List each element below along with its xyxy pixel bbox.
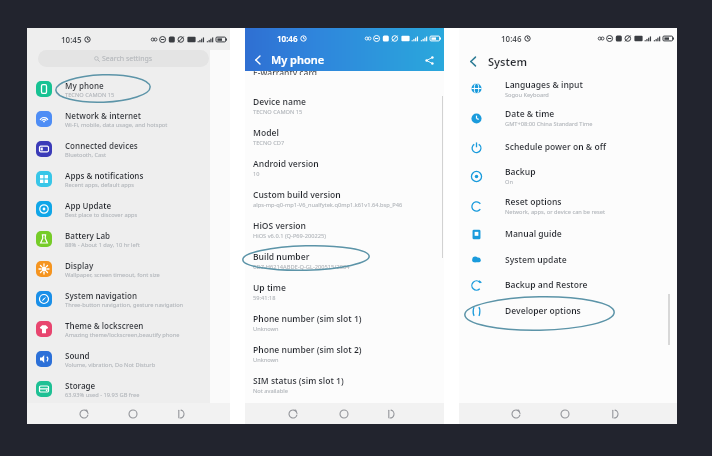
staticText: 88% - About 1 day, 10 hr left [65,241,140,249]
button[interactable]: Back [376,403,404,424]
staticText: Sound [65,350,90,361]
staticText: Backup [505,166,536,178]
staticText: Model [253,127,279,139]
button[interactable]: Recent apps [502,403,530,424]
staticText: Date & time [505,108,555,120]
staticText: Developer options [505,305,581,317]
staticText: CD7-H6214ABDE-Q-GL-200515/2004 [253,263,350,271]
button[interactable]: Custom build version [245,183,444,214]
staticText: App Update [65,200,112,211]
button[interactable]: Phone number (sim slot 1) [245,307,444,338]
staticText: My phone [65,80,104,91]
button[interactable]: Build number [245,245,444,276]
button[interactable]: Model [245,121,444,152]
staticText: Custom build version [253,189,341,201]
button[interactable]: Manual guide [459,221,677,247]
staticText: Three-button navigation, gesture navigat… [65,301,184,309]
staticText: Sogou Keyboard [505,91,549,99]
button[interactable]: Network & internet [27,104,210,134]
button[interactable]: Backup [459,161,677,191]
staticText: Unknown [253,325,279,333]
staticText: Storage [65,380,96,391]
button[interactable]: Reset options [459,191,677,221]
button[interactable]: Home [551,403,579,424]
button[interactable]: Android version [245,152,444,183]
staticText: Recent apps, default apps [65,181,134,189]
staticText: System [488,54,527,69]
button[interactable]: Search settings [38,50,209,67]
staticText: Not available [253,387,288,395]
staticText: 10:45 [61,34,82,45]
button[interactable]: Developer options [459,298,677,324]
staticText: HiOS version [253,220,306,232]
staticText: Device name [253,96,307,108]
staticText: 10:46 [277,33,298,44]
staticText: 10:46 [501,33,522,44]
staticText: 10 [253,170,260,178]
staticText: Network & internet [65,110,141,121]
staticText: Battery Lab [65,230,111,241]
button[interactable]: System update [459,247,677,272]
button[interactable]: Date & time [459,103,677,133]
button[interactable]: Back [600,403,628,424]
staticText: Display [65,260,94,271]
staticText: On [505,178,513,186]
staticText: System update [505,254,567,266]
staticText: Volume, vibration, Do Not Disturb [65,361,156,369]
button[interactable]: HiOS version [245,214,444,245]
button[interactable]: My phone [27,74,210,104]
staticText: TECNO CAMON 15 [65,91,115,99]
staticText: Languages & input [505,79,583,91]
staticText: HiOS v6.0.1 (Q-P69-200225) [253,232,326,240]
button[interactable]: Schedule power on & off [459,133,677,161]
button[interactable]: Storage [27,374,210,404]
staticText: Up time [253,282,286,294]
staticText: Manual guide [505,228,562,240]
staticText: TECNO CD7 [253,139,285,147]
button[interactable]: Back [466,54,480,68]
button[interactable]: Home [119,403,147,424]
staticText: TECNO CAMON 15 [253,108,303,116]
button[interactable]: Home [330,403,358,424]
staticText: Search settings [102,54,153,64]
button[interactable]: Backup and Restore [459,272,677,298]
staticText: Best place to discover apps [65,211,138,219]
staticText: Connected devices [65,140,138,151]
staticText: Android version [253,158,319,170]
button[interactable]: Share [422,53,436,67]
button[interactable]: Battery Lab [27,224,210,254]
staticText: Backup and Restore [505,279,588,291]
staticText: Bluetooth, Cast [65,151,106,159]
staticText: SIM status (sim slot 1) [253,375,344,387]
staticText: Wallpaper, screen timeout, font size [65,271,160,279]
button[interactable]: Back [251,53,265,67]
staticText: Unknown [253,356,279,364]
button[interactable]: System navigation [27,284,210,314]
button[interactable]: Phone number (sim slot 2) [245,338,444,369]
button[interactable]: Device name [245,90,444,121]
button[interactable]: Back [166,403,194,424]
staticText: 63.93% used - 19.93 GB free [65,391,140,399]
button[interactable]: SIM status (sim slot 1) [245,369,444,400]
staticText: E-warranty card [253,71,318,75]
button[interactable]: Display [27,254,210,284]
button[interactable]: Sound [27,344,210,374]
button[interactable]: Apps & notifications [27,164,210,194]
staticText: Network, apps, or device can be reset [505,208,605,216]
staticText: Theme & lockscreen [65,320,144,331]
button[interactable]: Recent apps [279,403,307,424]
staticText: Schedule power on & off [505,141,606,153]
button[interactable]: Theme & lockscreen [27,314,210,344]
staticText: Wi-Fi, mobile, data usage, and hotspot [65,121,168,129]
button[interactable]: App Update [27,194,210,224]
staticText: Apps & notifications [65,170,144,181]
button[interactable]: Languages & input [459,74,677,103]
button[interactable]: Connected devices [27,134,210,164]
staticText: GMT+08:00 China Standard Time [505,120,593,128]
staticText: 59:41:18 [253,294,276,302]
staticText: Reset options [505,196,562,208]
staticText: Phone number (sim slot 2) [253,344,362,356]
staticText: alps-mp-q0-mp1-V6_nualfytek.q0mp1.k61v1.… [253,201,403,209]
button[interactable]: Up time [245,276,444,307]
button[interactable]: Recent apps [70,403,98,424]
